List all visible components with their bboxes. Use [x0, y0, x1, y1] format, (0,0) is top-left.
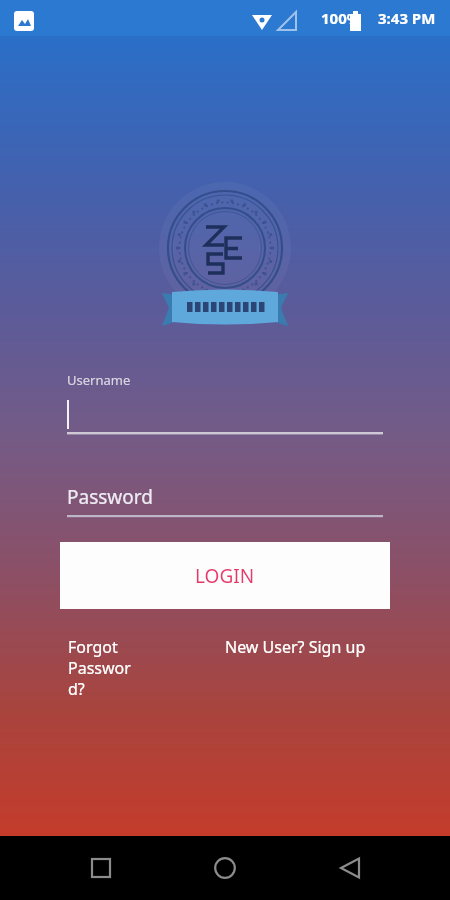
staticText: Password: [67, 484, 153, 510]
staticText: LOGIN: [195, 563, 255, 589]
staticText: Username: [67, 371, 131, 389]
staticText: 100%: [321, 8, 361, 28]
staticText: Forgot Password?: [68, 636, 138, 700]
button[interactable]: LOGIN: [60, 542, 390, 609]
staticText: New User? Sign up: [225, 636, 367, 658]
button[interactable]: Recent apps: [77, 844, 125, 892]
button[interactable]: Home: [201, 844, 249, 892]
button[interactable]: New User? Sign up: [219, 634, 379, 660]
button[interactable]: Forgot Password?: [62, 634, 202, 702]
button[interactable]: Username field: [60, 366, 390, 436]
staticText: 3:43 PM: [378, 8, 436, 28]
button[interactable]: Back: [326, 844, 374, 892]
button[interactable]: Password: [60, 476, 390, 521]
